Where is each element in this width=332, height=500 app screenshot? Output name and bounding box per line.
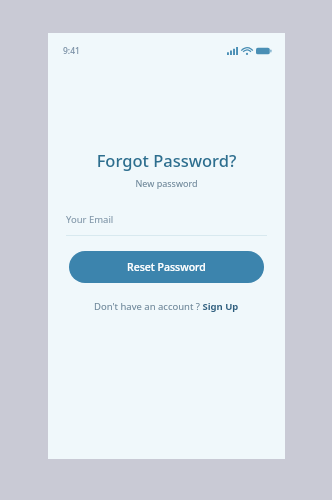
button[interactable]: Don't have an account ? Sign Up [88, 297, 245, 316]
staticText: Don't have an account ? Sign Up [94, 300, 239, 313]
other: Wi-Fi [242, 47, 252, 55]
staticText: New password [48, 177, 285, 189]
staticText: Forgot Password? [48, 149, 285, 171]
other: Cellular signal [227, 47, 238, 55]
button[interactable]: Reset Password [69, 251, 264, 283]
other: Battery [256, 47, 272, 55]
staticText: 9:41 [63, 45, 80, 57]
staticText: Your Email [66, 213, 114, 226]
staticText: Reset Password [127, 260, 206, 274]
button[interactable]: Your Email [66, 213, 267, 236]
